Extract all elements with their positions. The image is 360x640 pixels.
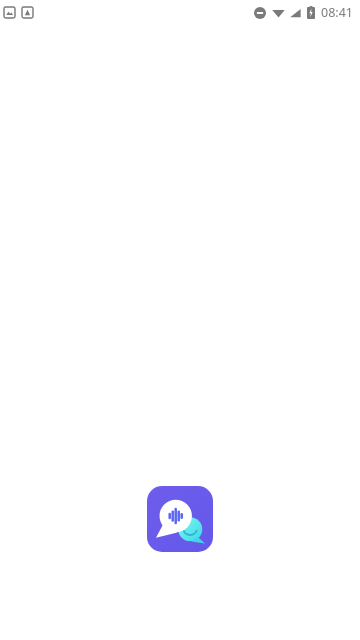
staticText: 08:41 (321, 4, 353, 21)
button[interactable]: App logo (147, 486, 213, 552)
